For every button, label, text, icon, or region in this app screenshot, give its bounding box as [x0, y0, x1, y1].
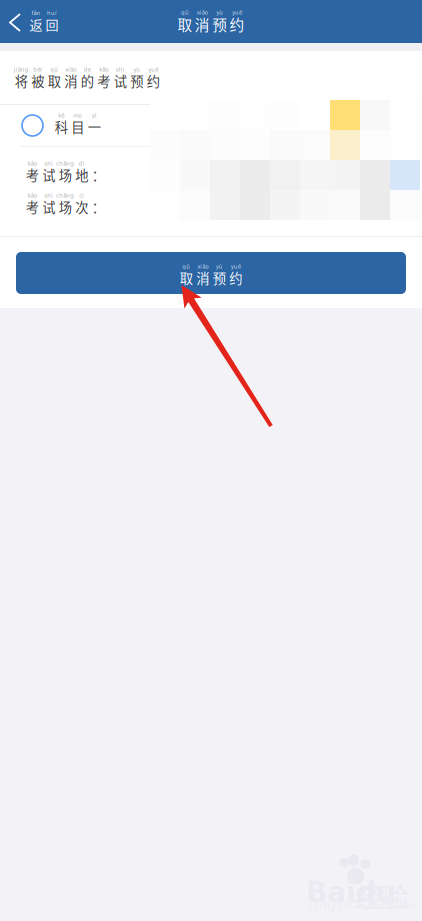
staticText: 试	[114, 71, 127, 90]
staticText: huí	[47, 10, 57, 16]
staticText: yī	[92, 112, 97, 119]
staticText: kǎo	[99, 66, 108, 73]
staticText: 取	[180, 268, 193, 287]
staticText: 场	[59, 197, 72, 216]
staticText: ：	[92, 165, 105, 184]
staticText: 预	[212, 13, 227, 35]
staticText: 约	[147, 71, 160, 90]
staticText: dì	[79, 160, 85, 167]
staticText: qǔ	[182, 263, 190, 270]
staticText: kǎo	[28, 192, 37, 199]
staticText: jingyan.baidu.com	[308, 895, 422, 912]
staticText: kǎo	[28, 160, 37, 167]
staticText: xiāo	[65, 66, 76, 73]
staticText: 约	[229, 13, 244, 35]
staticText: jiāng	[14, 66, 29, 73]
staticText: 考	[26, 197, 39, 216]
staticText: 预	[213, 268, 226, 287]
staticText: 约	[229, 268, 242, 287]
staticText: Baidu	[306, 876, 396, 909]
staticText: de	[84, 66, 91, 73]
staticText: yuē	[231, 263, 241, 270]
staticText: 地	[75, 165, 88, 184]
staticText: ：	[92, 197, 105, 216]
staticText: 将	[15, 71, 28, 90]
staticText: 考	[26, 165, 39, 184]
staticText: shì	[116, 66, 125, 73]
staticText: 次	[75, 197, 88, 216]
staticText: 取	[178, 13, 193, 35]
staticText: qǔ	[50, 66, 58, 73]
staticText: shì	[44, 160, 53, 167]
staticText: yù	[133, 66, 140, 73]
staticText: kē	[58, 112, 64, 119]
staticText: xiāo	[197, 263, 208, 270]
staticText: 被	[31, 71, 44, 90]
staticText: 消	[195, 13, 210, 35]
staticText: 场	[59, 165, 72, 184]
staticText: yuē	[148, 66, 158, 73]
button[interactable]: qǔ	[16, 252, 406, 294]
staticText: 回	[45, 15, 58, 33]
staticText: xiāo	[197, 9, 208, 16]
staticText: chǎng	[56, 192, 74, 199]
staticText: 取	[48, 71, 61, 90]
staticText: 返	[29, 15, 42, 33]
staticText: cì	[79, 192, 84, 199]
staticText: chǎng	[56, 160, 74, 167]
staticText: 考	[97, 71, 110, 90]
staticText: 消	[64, 71, 77, 90]
staticText: 目	[71, 117, 84, 136]
staticText: qǔ	[181, 9, 189, 16]
button[interactable]: fǎn	[0, 0, 68, 43]
staticText: fǎn	[31, 10, 40, 16]
staticText: 科	[55, 117, 68, 136]
staticText: yù	[216, 263, 223, 270]
staticText: 预	[130, 71, 143, 90]
staticText: yuē	[232, 9, 242, 16]
staticText: 试	[42, 197, 55, 216]
staticText: shì	[44, 192, 53, 199]
staticText: 经验	[355, 876, 409, 915]
staticText: bèi	[33, 66, 42, 73]
staticText: 一	[88, 117, 101, 136]
staticText: yù	[216, 9, 223, 16]
staticText: 消	[196, 268, 209, 287]
staticText: 的	[81, 71, 94, 90]
staticText: mù	[73, 112, 82, 119]
staticText: 试	[42, 165, 55, 184]
